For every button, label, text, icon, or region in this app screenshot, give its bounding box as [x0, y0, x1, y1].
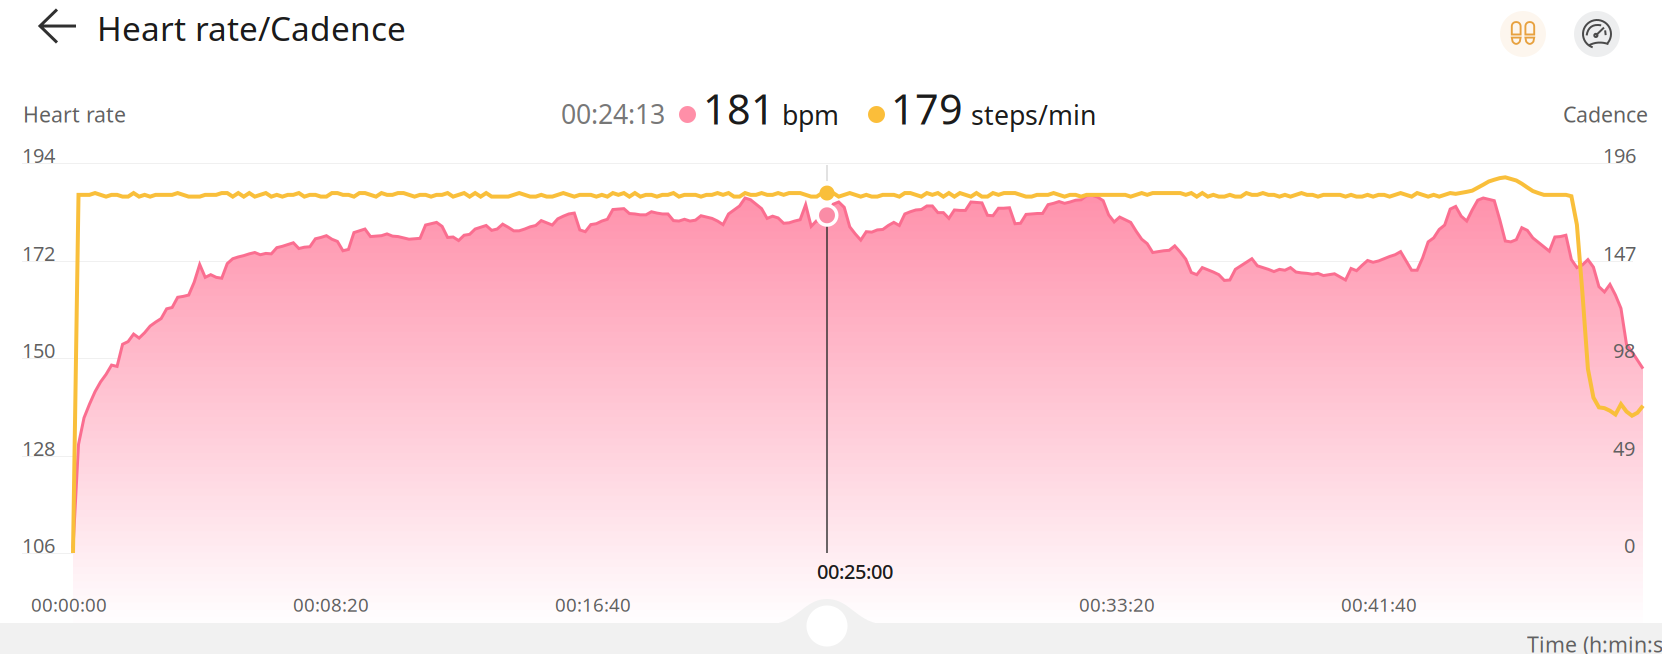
staticText: 194 — [22, 142, 55, 169]
staticText: 128 — [22, 435, 55, 462]
staticText: 172 — [22, 240, 55, 267]
staticText: 179 — [891, 81, 963, 136]
staticText: 196 — [1603, 142, 1636, 169]
staticText: 150 — [22, 337, 55, 364]
staticText: 49 — [1613, 435, 1635, 462]
staticText: bpm — [782, 97, 839, 132]
staticText: 00:16:40 — [555, 592, 631, 617]
staticText: 98 — [1613, 337, 1635, 364]
button[interactable]: Back — [29, 0, 87, 55]
staticText: 00:08:20 — [293, 592, 369, 617]
staticText: Heart rate/Cadence — [97, 6, 406, 50]
staticText: 00:00:00 — [31, 592, 107, 617]
staticText: Cadence — [1563, 100, 1648, 128]
staticText: 00:33:20 — [1079, 592, 1155, 617]
button[interactable]: Speed — [1574, 11, 1620, 57]
staticText: Heart rate — [23, 100, 126, 128]
staticText: 00:24:13 — [561, 96, 665, 131]
staticText: 147 — [1603, 240, 1636, 267]
staticText: Time (h:min:sec) — [1527, 630, 1662, 654]
button[interactable]: Cadence — [1500, 11, 1546, 57]
staticText: 106 — [22, 532, 55, 559]
staticText: 00:41:40 — [1341, 592, 1417, 617]
staticText: 181 — [703, 81, 775, 136]
staticText: 00:25:00 — [817, 558, 893, 585]
staticText: 0 — [1624, 532, 1635, 559]
staticText: steps/min — [971, 97, 1096, 132]
